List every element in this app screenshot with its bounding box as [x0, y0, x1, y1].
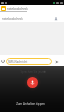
- staticText: notebookcheck: [7, 7, 28, 11]
- staticText: Zum Anhalten tippen: [16, 102, 45, 106]
- button[interactable]: SMS-Nachricht: [8, 58, 50, 65]
- button[interactable]: notebookcheck: [2, 15, 51, 22]
- button[interactable]: Account: [52, 15, 60, 23]
- button[interactable]: notebookcheck: [1, 5, 64, 12]
- staticText: notebookcheck: [2, 17, 23, 21]
- button[interactable]: Stop recording: [27, 77, 38, 88]
- button[interactable]: Delete recording: [41, 68, 47, 74]
- staticText: SMS-Nachricht: [8, 60, 28, 64]
- staticText: Sprechen Sie jetzt: [20, 70, 44, 74]
- button[interactable]: Send: [53, 58, 60, 65]
- button[interactable]: Attach: [0, 58, 6, 64]
